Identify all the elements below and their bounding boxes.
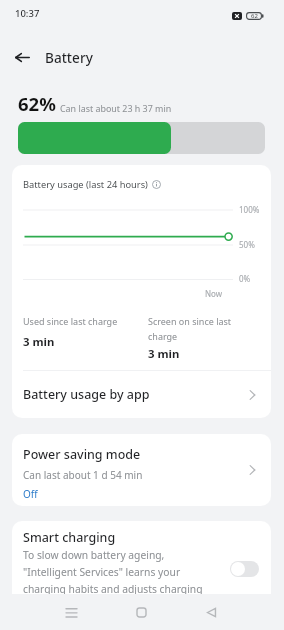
staticText: Smart charging: [23, 529, 116, 546]
button[interactable]: Home: [128, 599, 154, 625]
staticText: 50%: [239, 239, 255, 250]
button[interactable]: Back: [198, 599, 224, 625]
staticText: 100%: [239, 204, 260, 215]
button[interactable]: Recent apps: [58, 599, 84, 625]
staticText: Now: [205, 288, 223, 299]
staticText: Can last about 23 h 37 min: [60, 102, 172, 114]
staticText: 0%: [239, 273, 251, 284]
staticText: To slow down battery ageing, "Intelligen…: [23, 548, 203, 596]
staticText: 10:37: [15, 7, 40, 20]
staticText: 3 min: [23, 334, 55, 350]
staticText: 3 min: [148, 346, 180, 362]
staticText: Can last about 1 d 54 min: [23, 468, 143, 482]
staticText: 62: [251, 12, 258, 20]
staticText: Power saving mode: [23, 446, 141, 463]
staticText: Screen on since last charge: [148, 315, 232, 342]
staticText: Battery usage (last 24 hours): [23, 178, 148, 191]
button[interactable]: Battery usage by app: [12, 371, 271, 418]
button[interactable]: Back: [0, 35, 45, 80]
staticText: Used since last charge: [23, 315, 118, 327]
staticText: Battery: [45, 48, 93, 67]
staticText: Battery usage by app: [23, 386, 249, 403]
staticText: Off: [23, 487, 38, 501]
button[interactable]: Power saving mode: [12, 434, 271, 506]
button[interactable]: Smart charging toggle: [230, 561, 259, 577]
staticText: 62%: [18, 91, 56, 116]
